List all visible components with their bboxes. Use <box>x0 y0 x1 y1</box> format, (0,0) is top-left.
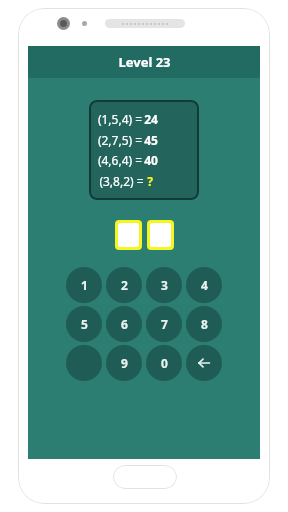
button[interactable]: 2 <box>106 267 142 303</box>
button[interactable]: Home <box>113 465 177 489</box>
staticText: 1 <box>81 277 88 293</box>
staticText: (3,8,2) = <box>96 173 147 189</box>
button[interactable]: 8 <box>186 306 222 342</box>
staticText: Level 23 <box>118 53 171 71</box>
staticText: 40 <box>144 152 158 168</box>
staticText: 3 <box>161 277 168 293</box>
button[interactable]: 4 <box>186 267 222 303</box>
button[interactable]: 5 <box>66 306 102 342</box>
button[interactable]: 1 <box>66 267 102 303</box>
button[interactable]: 7 <box>146 306 182 342</box>
staticText: 45 <box>144 132 158 148</box>
staticText: 4 <box>201 277 208 293</box>
staticText: 5 <box>81 316 88 332</box>
staticText: (4,6,4) = <box>96 152 144 168</box>
staticText: 8 <box>201 316 208 332</box>
staticText: 0 <box>161 355 168 371</box>
staticText: 2 <box>121 277 128 293</box>
button[interactable]: 3 <box>146 267 182 303</box>
staticText: (1,5,4) = <box>96 111 144 127</box>
staticText: 24 <box>144 111 158 127</box>
button[interactable] <box>118 223 139 247</box>
button[interactable]: Level 23 <box>28 46 260 78</box>
button[interactable]: 0 <box>146 345 182 381</box>
button[interactable]: 9 <box>106 345 142 381</box>
staticText: ? <box>147 173 153 189</box>
staticText: 7 <box>161 316 168 332</box>
staticText: 9 <box>121 355 128 371</box>
button[interactable] <box>150 223 171 247</box>
staticText: 6 <box>121 316 128 332</box>
staticText: (2,7,5) = <box>96 132 144 148</box>
button[interactable]: Backspace <box>186 345 222 381</box>
button[interactable]: 6 <box>106 306 142 342</box>
